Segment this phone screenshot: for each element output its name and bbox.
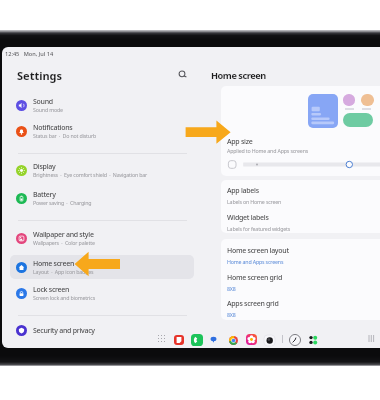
button[interactable]: App labels — [221, 184, 380, 210]
staticText: Sound mode — [33, 106, 63, 113]
staticText: Home screen — [33, 259, 74, 269]
button[interactable]: Home screen layout — [221, 244, 380, 270]
button[interactable]: Recent app 2 — [308, 335, 318, 345]
staticText: Home and Apps screens — [227, 258, 284, 265]
staticText: Wallpaper and style — [33, 230, 94, 240]
button[interactable]: Home screen grid — [221, 271, 380, 297]
staticText: Layout · App icon badges — [33, 268, 94, 275]
staticText: 12:45 Mon, Jul 14 — [5, 50, 54, 58]
button[interactable]: Search — [174, 66, 190, 82]
staticText: Display — [33, 162, 56, 172]
staticText: Lock screen — [33, 285, 70, 295]
staticText: 8X8 — [227, 311, 236, 318]
button[interactable]: Gallery — [246, 334, 257, 345]
staticText: Sound — [33, 97, 53, 107]
button[interactable]: Camera — [264, 335, 275, 346]
staticText: Labels on Home screen — [227, 198, 282, 205]
button[interactable]: Lock screen — [10, 281, 194, 305]
button[interactable]: App size slider — [225, 157, 380, 172]
button[interactable]: Display — [10, 158, 194, 182]
button[interactable]: Widget labels — [221, 211, 380, 233]
staticText: Apps screen grid — [227, 299, 279, 309]
button[interactable]: All apps — [157, 334, 166, 343]
button[interactable]: Security and privacy — [10, 318, 194, 342]
staticText: App labels — [227, 186, 259, 196]
staticText: Home screen layout — [227, 246, 289, 256]
button[interactable]: Battery — [10, 186, 194, 210]
staticText: Wallpapers · Color palette — [33, 239, 95, 246]
staticText: Home screen — [211, 69, 266, 82]
button[interactable]: Chrome — [229, 336, 238, 345]
button[interactable]: Notifications — [10, 119, 194, 143]
button[interactable]: Phone — [191, 334, 203, 346]
button[interactable]: Wallpaper and style — [10, 226, 194, 250]
button[interactable]: Apps screen grid — [221, 297, 380, 320]
staticText: Status bar · Do not disturb — [33, 132, 97, 139]
staticText: Brightness · Eye comfort shield · Naviga… — [33, 171, 148, 178]
button[interactable]: Samsung Notes — [174, 335, 184, 345]
button[interactable]: Sound — [10, 93, 194, 117]
staticText: Labels for featured widgets — [227, 225, 291, 232]
staticText: Widget labels — [227, 213, 269, 223]
staticText: 8X8 — [227, 285, 236, 292]
button[interactable]: Recent app 1 — [289, 334, 301, 346]
staticText: Applied to Home and Apps screens — [227, 147, 309, 154]
button[interactable]: Messages — [210, 336, 217, 343]
staticText: Settings — [17, 68, 63, 83]
button[interactable]: Home screen — [10, 255, 194, 279]
staticText: App size — [227, 137, 253, 147]
staticText: Power saving · Charging — [33, 199, 92, 206]
staticText: Home screen grid — [227, 273, 282, 283]
staticText: Notifications — [33, 123, 73, 133]
staticText: Battery — [33, 190, 56, 200]
staticText: Screen lock and biometrics — [33, 294, 95, 301]
staticText: Security and privacy — [33, 326, 95, 336]
